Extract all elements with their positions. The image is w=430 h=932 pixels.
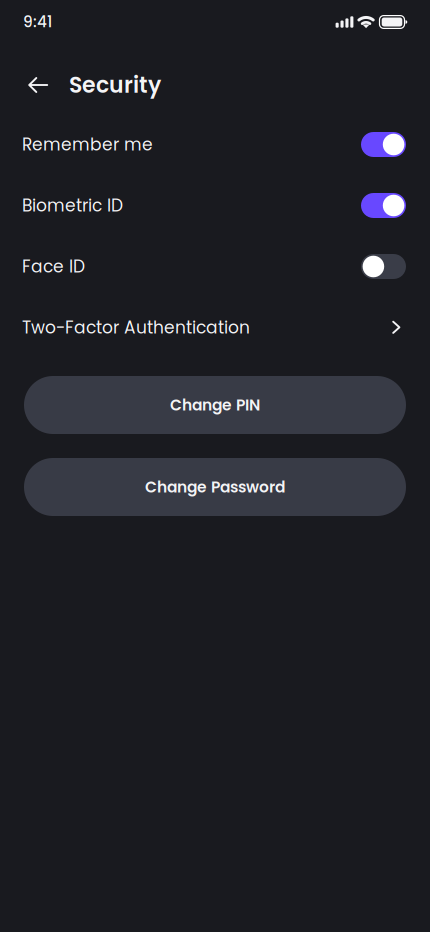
staticText: Face ID xyxy=(22,255,85,278)
staticText: 9:41 xyxy=(23,11,52,33)
staticText: Biometric ID xyxy=(22,194,123,217)
button[interactable]: Remember me xyxy=(0,114,430,175)
staticText: Security xyxy=(69,70,161,100)
staticText: Two-Factor Authentication xyxy=(22,316,250,339)
staticText: Change PIN xyxy=(170,394,260,416)
staticText: Remember me xyxy=(22,133,153,156)
button[interactable]: Back xyxy=(22,69,54,101)
button[interactable]: Change PIN xyxy=(24,376,406,434)
button[interactable]: Face ID xyxy=(0,236,430,297)
button[interactable]: Change Password xyxy=(24,458,406,516)
button[interactable]: Biometric ID xyxy=(0,175,430,236)
staticText: Change Password xyxy=(145,476,285,498)
button[interactable]: Two-Factor Authentication xyxy=(0,297,430,358)
